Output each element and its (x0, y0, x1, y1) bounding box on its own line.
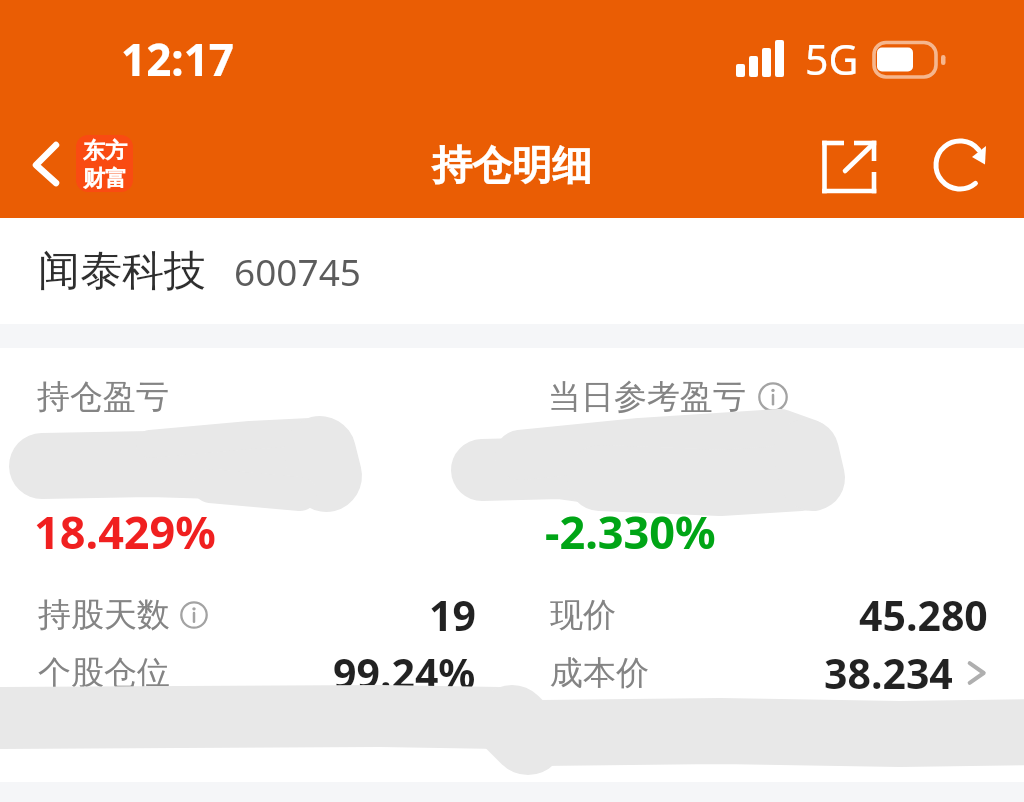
staticText: 45.280 (859, 587, 988, 643)
staticText: 财富 (83, 165, 127, 192)
staticText: 99.24% (333, 645, 476, 701)
button[interactable]: 闻泰科技 (0, 218, 1024, 324)
button[interactable]: 个股仓位 (0, 644, 512, 702)
staticText: 东方 (83, 137, 127, 165)
button[interactable]: Back (16, 128, 78, 190)
staticText: 18.429% (34, 501, 216, 562)
button[interactable]: Refresh (920, 126, 1000, 206)
staticText: 闻泰科技 (38, 245, 206, 298)
button[interactable]: Share (809, 128, 889, 208)
staticText: 19 (429, 587, 476, 643)
button[interactable]: 现价 (512, 586, 1024, 644)
staticText: 持仓盈亏 (37, 376, 169, 418)
button[interactable]: East Money (76, 135, 133, 192)
staticText: 5G (805, 31, 859, 87)
staticText: 个股仓位 (38, 652, 170, 694)
staticText: 成本价 (550, 652, 649, 694)
button[interactable]: 成本价 (512, 644, 1024, 702)
staticText: 持仓明细 (0, 140, 1024, 190)
staticText: 600745 (234, 246, 361, 296)
button[interactable]: 持股天数 (0, 586, 512, 644)
staticText: 12:17 (121, 29, 235, 89)
staticText: 持股天数 (38, 594, 170, 636)
staticText: -2.330% (545, 501, 716, 562)
staticText: 38.234 (824, 645, 953, 701)
staticText: 现价 (550, 594, 616, 636)
staticText: 当日参考盈亏 (548, 376, 746, 418)
